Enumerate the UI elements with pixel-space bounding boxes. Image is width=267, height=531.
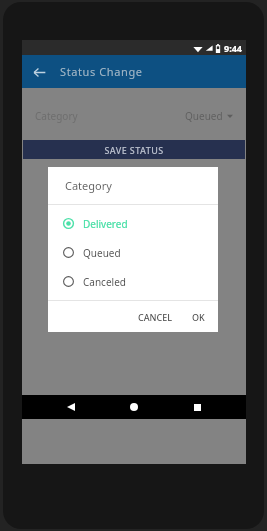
button[interactable]: Recent apps: [183, 395, 211, 419]
staticText: Queued: [83, 246, 121, 260]
button[interactable]: Delivered: [48, 209, 218, 238]
button[interactable]: CANCEL: [131, 306, 180, 328]
button[interactable]: Category: [22, 105, 246, 127]
staticText: CANCEL: [138, 311, 173, 323]
button[interactable]: Back: [57, 395, 85, 419]
staticText: Status Change: [60, 64, 143, 79]
button[interactable]: Canceled: [48, 267, 218, 296]
staticText: Queued: [185, 109, 223, 123]
button[interactable]: Back: [28, 61, 50, 83]
staticText: 9:44: [224, 42, 242, 54]
staticText: Canceled: [83, 275, 126, 289]
staticText: SAVE STATUS: [104, 144, 164, 156]
staticText: Delivered: [83, 217, 128, 231]
staticText: OK: [192, 311, 205, 323]
button[interactable]: OK: [185, 306, 212, 328]
button[interactable]: SAVE STATUS: [23, 140, 245, 159]
button[interactable]: Home: [120, 395, 148, 419]
button[interactable]: Queued: [48, 238, 218, 267]
staticText: Category: [65, 178, 112, 193]
staticText: Category: [35, 109, 78, 123]
